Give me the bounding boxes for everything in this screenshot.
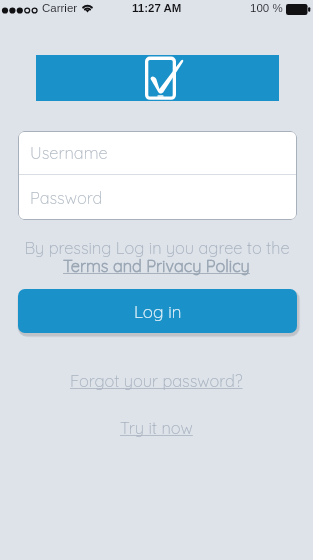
staticText: 11:27 AM (132, 2, 182, 15)
staticText: 100 % (250, 2, 283, 15)
staticText: By pressing Log in you agree to the (24, 238, 290, 258)
staticText: Log in (134, 301, 182, 322)
button[interactable]: Terms and Privacy Policy (63, 256, 250, 276)
staticText: Username (30, 143, 108, 163)
button[interactable]: Password (18, 175, 297, 220)
staticText: Password (30, 188, 103, 208)
button[interactable]: Try it now (120, 418, 193, 438)
button[interactable]: Forgot your password? (70, 371, 243, 391)
button[interactable]: Username (18, 131, 297, 174)
button[interactable]: Log in (18, 289, 297, 333)
staticText: Carrier (42, 2, 78, 15)
